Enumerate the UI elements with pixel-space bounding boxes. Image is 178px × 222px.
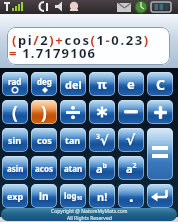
staticText: π: [97, 75, 107, 93]
button[interactable]: π: [89, 72, 115, 96]
staticText: asin: [7, 163, 24, 174]
button[interactable]: [60, 100, 86, 124]
button[interactable]: sin: [2, 128, 28, 152]
staticText: a2: [126, 161, 137, 176]
staticText: exp: [7, 190, 24, 202]
button[interactable]: tan: [60, 128, 86, 152]
staticText: log10: [64, 190, 83, 202]
button[interactable]: [147, 184, 173, 208]
button[interactable]: [118, 100, 144, 124]
staticText: All Rights Reserved: [67, 215, 112, 221]
button[interactable]: del: [60, 72, 86, 96]
button[interactable]: log10: [60, 184, 86, 208]
button[interactable]: Copyright @ NatureMyMats.com: [1, 208, 177, 221]
button[interactable]: ab: [89, 156, 115, 180]
button[interactable]: a2: [118, 156, 144, 180]
staticText: tan: [65, 134, 81, 146]
staticText: (: [12, 101, 18, 124]
button[interactable]: [147, 128, 173, 180]
staticText: e: [127, 75, 135, 93]
button[interactable]: (: [2, 100, 28, 124]
button[interactable]: C: [147, 72, 173, 96]
staticText: 3√: [96, 132, 109, 148]
staticText: ab: [96, 161, 108, 176]
button[interactable]: ): [31, 100, 57, 124]
button[interactable]: [89, 100, 115, 124]
staticText: .: [129, 185, 134, 207]
staticText: ): [41, 101, 47, 124]
staticText: Copyright @ NatureMyMats.com: [51, 208, 128, 215]
staticText: sin: [8, 134, 22, 146]
staticText: (pi/2)+cos(1-0.23): [12, 31, 150, 49]
staticText: acos: [35, 163, 53, 174]
button[interactable]: atan: [60, 156, 86, 180]
button[interactable]: n!: [89, 184, 115, 208]
button[interactable]: acos: [31, 156, 57, 180]
staticText: deg: [37, 76, 52, 87]
staticText: ln: [39, 189, 49, 203]
button[interactable]: rad: [2, 72, 28, 96]
button[interactable]: .: [118, 184, 144, 208]
button[interactable]: deg: [31, 72, 57, 96]
button[interactable]: ln: [31, 184, 57, 208]
staticText: = 1.7179106: [9, 44, 97, 62]
button[interactable]: e: [118, 72, 144, 96]
staticText: √: [126, 132, 136, 148]
staticText: del: [65, 77, 82, 92]
button[interactable]: cos: [31, 128, 57, 152]
button[interactable]: asin: [2, 156, 28, 180]
button[interactable]: √: [118, 128, 144, 152]
button[interactable]: 3√: [89, 128, 115, 152]
staticText: cos: [37, 134, 52, 146]
button[interactable]: [147, 100, 173, 124]
staticText: n!: [97, 189, 108, 204]
staticText: rad: [8, 76, 22, 87]
staticText: C: [156, 75, 165, 94]
staticText: atan: [64, 163, 83, 174]
button[interactable]: exp: [2, 184, 28, 208]
